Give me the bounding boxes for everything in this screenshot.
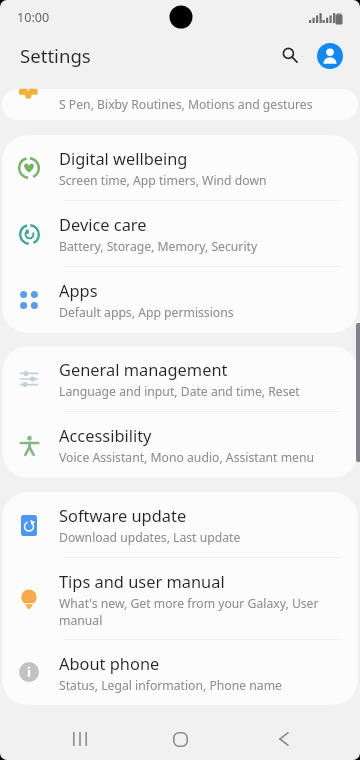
button[interactable]: Accessibility xyxy=(2,412,358,478)
button[interactable]: Recents xyxy=(36,706,108,754)
staticText: 10:00 xyxy=(17,9,50,26)
staticText: Device care xyxy=(59,213,147,235)
button[interactable]: Account xyxy=(312,38,348,74)
staticText: Battery, Storage, Memory, Security xyxy=(59,238,258,255)
button[interactable]: General management xyxy=(2,346,358,412)
staticText: Digital wellbeing xyxy=(59,147,188,169)
staticText: General management xyxy=(59,358,228,380)
staticText: Download updates, Last update xyxy=(59,529,241,546)
staticText: Language and input, Date and time, Reset xyxy=(59,383,300,400)
staticText: Software update xyxy=(59,504,187,526)
staticText: Default apps, App permissions xyxy=(59,304,234,321)
button[interactable]: Apps xyxy=(2,267,358,333)
button[interactable]: Back xyxy=(252,706,324,754)
button[interactable]: Search xyxy=(272,38,308,74)
button[interactable]: Software update xyxy=(2,492,358,558)
staticText: What's new, Get more from your Galaxy, U… xyxy=(59,595,322,629)
staticText: Apps xyxy=(59,279,98,301)
staticText: S Pen, Bixby Routines, Motions and gestu… xyxy=(59,96,313,113)
button[interactable]: Tips and user manual xyxy=(2,558,358,640)
staticText: About phone xyxy=(59,652,160,674)
button[interactable]: Home xyxy=(144,706,216,754)
staticText: Voice Assistant, Mono audio, Assistant m… xyxy=(59,449,314,466)
button[interactable]: Device care xyxy=(2,201,358,267)
staticText: Status, Legal information, Phone name xyxy=(59,677,282,694)
staticText: Tips and user manual xyxy=(59,570,225,592)
button[interactable]: About phone xyxy=(2,640,358,705)
button[interactable]: Digital wellbeing xyxy=(2,135,358,201)
button[interactable]: S Pen, Bixby Routines, Motions and gestu… xyxy=(2,89,358,120)
staticText: Accessibility xyxy=(59,424,152,446)
staticText: Settings xyxy=(20,43,91,68)
staticText: Screen time, App timers, Wind down xyxy=(59,172,267,189)
